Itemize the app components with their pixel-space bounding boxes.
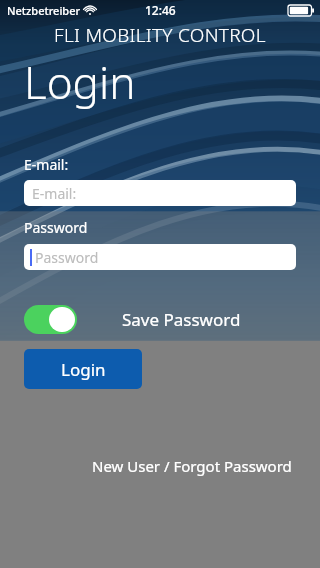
button[interactable]: New User / Forgot Password [88,452,296,480]
staticText: Netzbetreiber [7,3,81,18]
staticText: E-mail: [24,155,69,174]
staticText: FLI MOBILITY CONTROL [54,22,266,48]
staticText: 12:46 [145,2,176,18]
button[interactable]: Save password toggle, on [24,305,77,334]
staticText: Password [35,248,99,267]
staticText: Password [24,218,88,237]
button[interactable]: Login [24,349,142,389]
other: Battery [288,5,314,16]
staticText: Save Password [122,308,241,331]
staticText: E-mail: [32,184,77,203]
staticText: New User / Forgot Password [92,456,292,476]
staticText: Login [24,52,136,112]
other: Wi-Fi signal [83,3,97,17]
button[interactable]: E-mail: [24,180,296,206]
button[interactable]: Password [24,244,296,270]
staticText: Login [61,358,106,381]
